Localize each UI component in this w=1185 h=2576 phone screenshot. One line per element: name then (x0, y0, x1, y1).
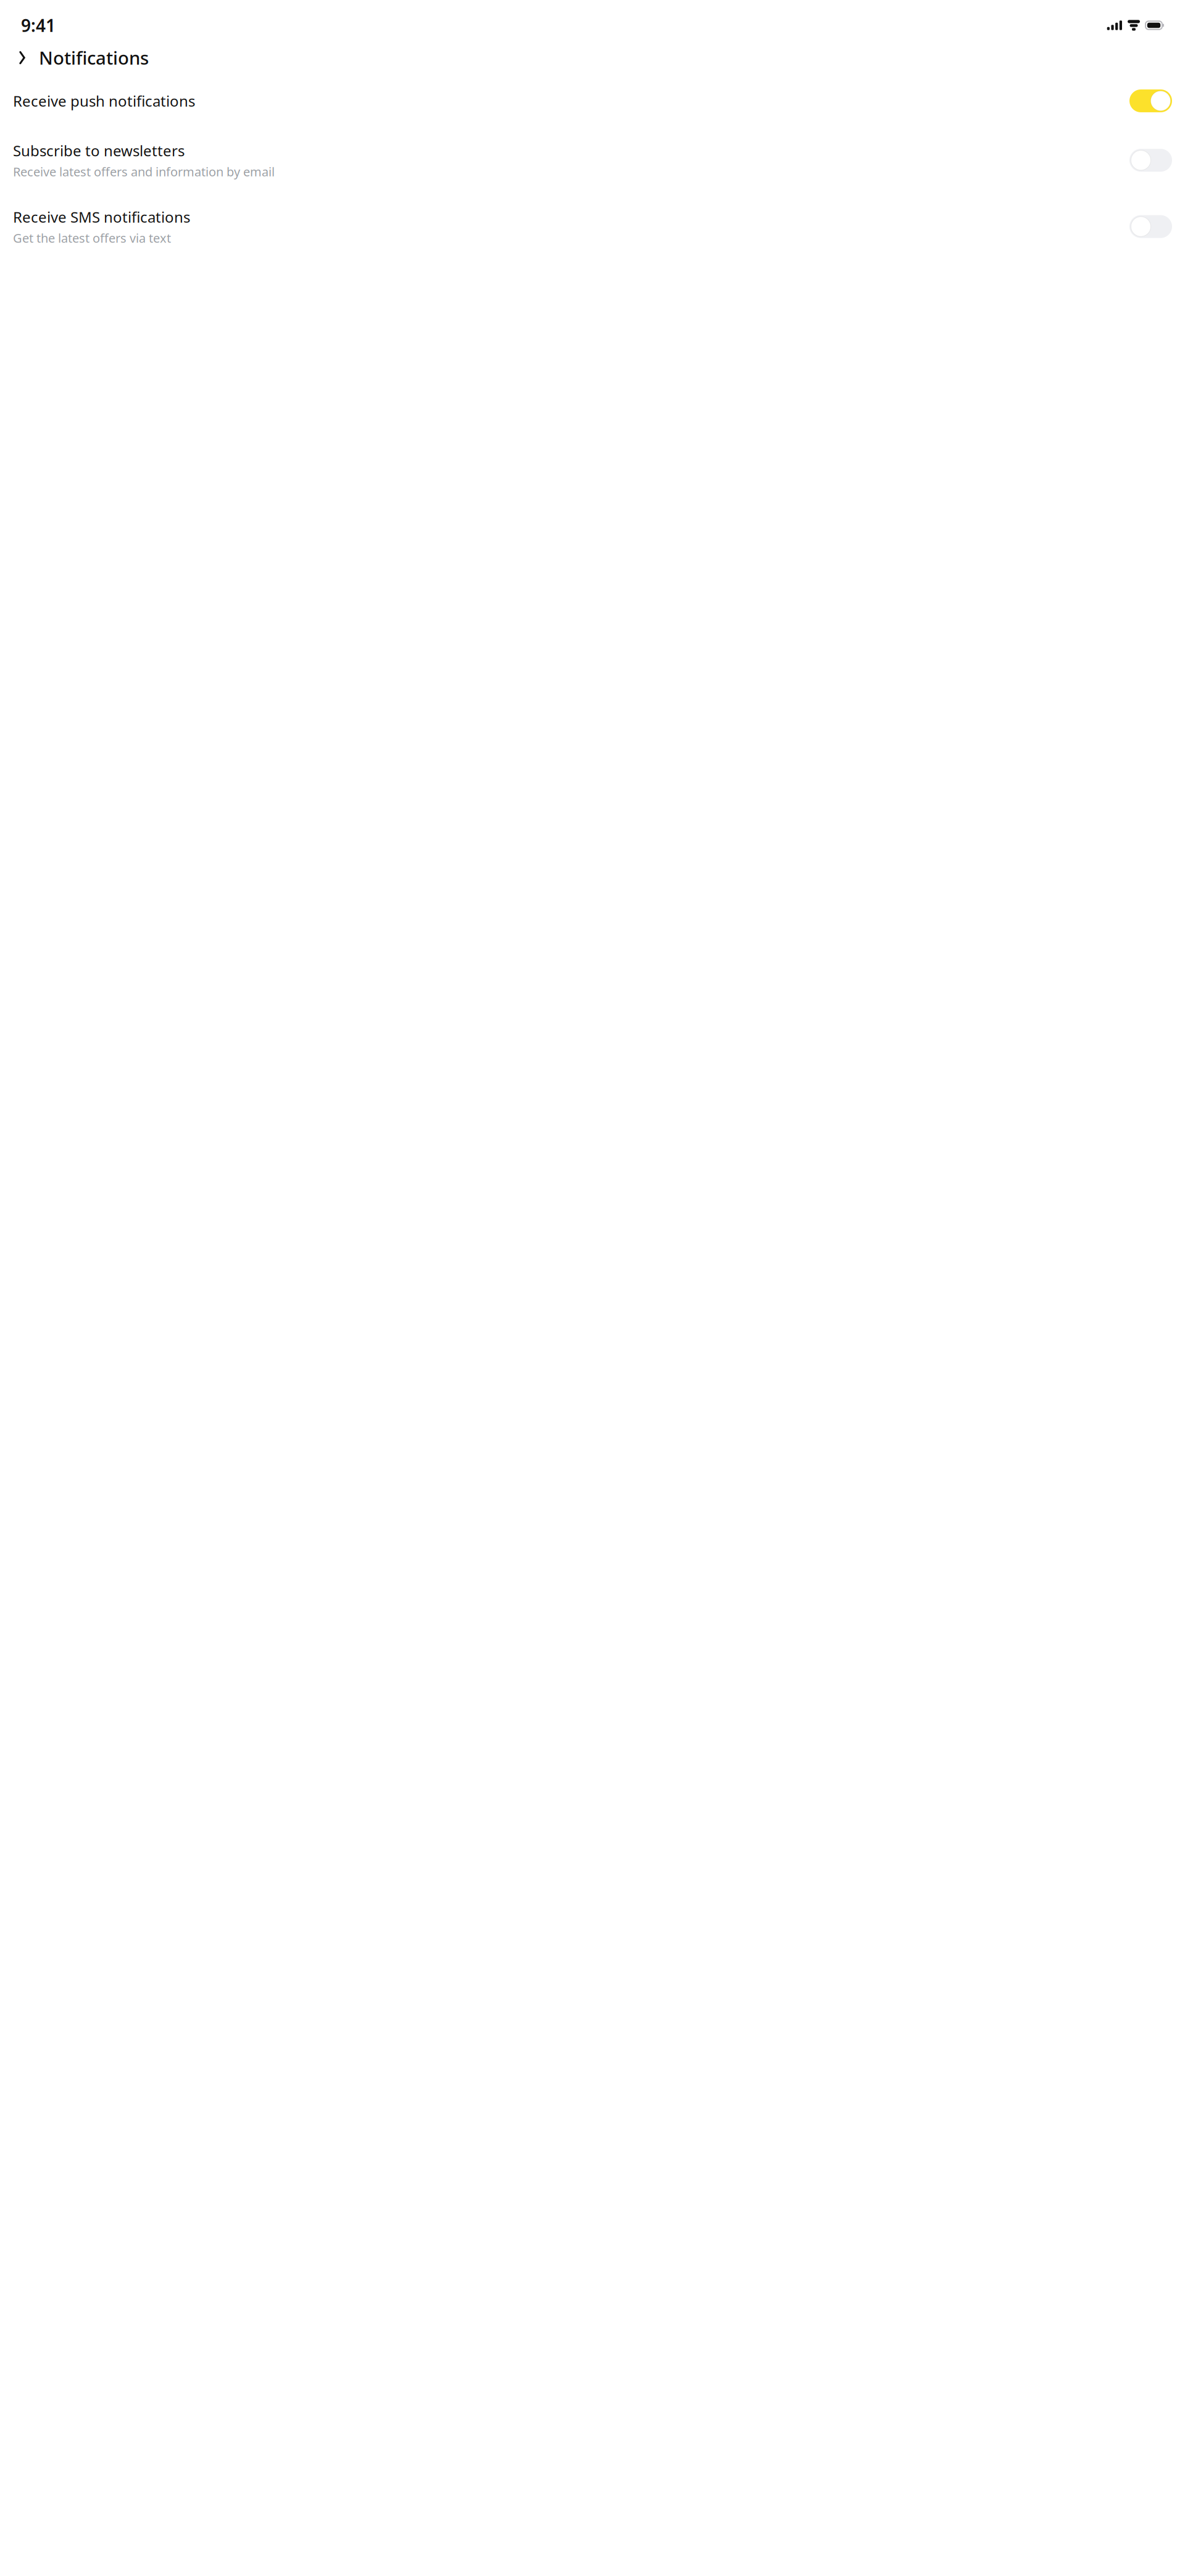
staticText: Receive latest offers and information by… (13, 163, 275, 180)
staticText: 9:41 (21, 14, 56, 37)
button[interactable]: Subscribe to newsletters (0, 135, 1185, 186)
button[interactable]: Receive push notifications (0, 83, 1185, 118)
button[interactable]: Receive SMS notifications (0, 201, 1185, 252)
button[interactable]: Back (13, 47, 31, 68)
staticText: Receive SMS notifications (13, 207, 190, 227)
staticText: Get the latest offers via text (13, 230, 171, 246)
staticText: Receive push notifications (13, 91, 195, 111)
staticText: Notifications (39, 46, 149, 70)
staticText: Subscribe to newsletters (13, 141, 185, 160)
